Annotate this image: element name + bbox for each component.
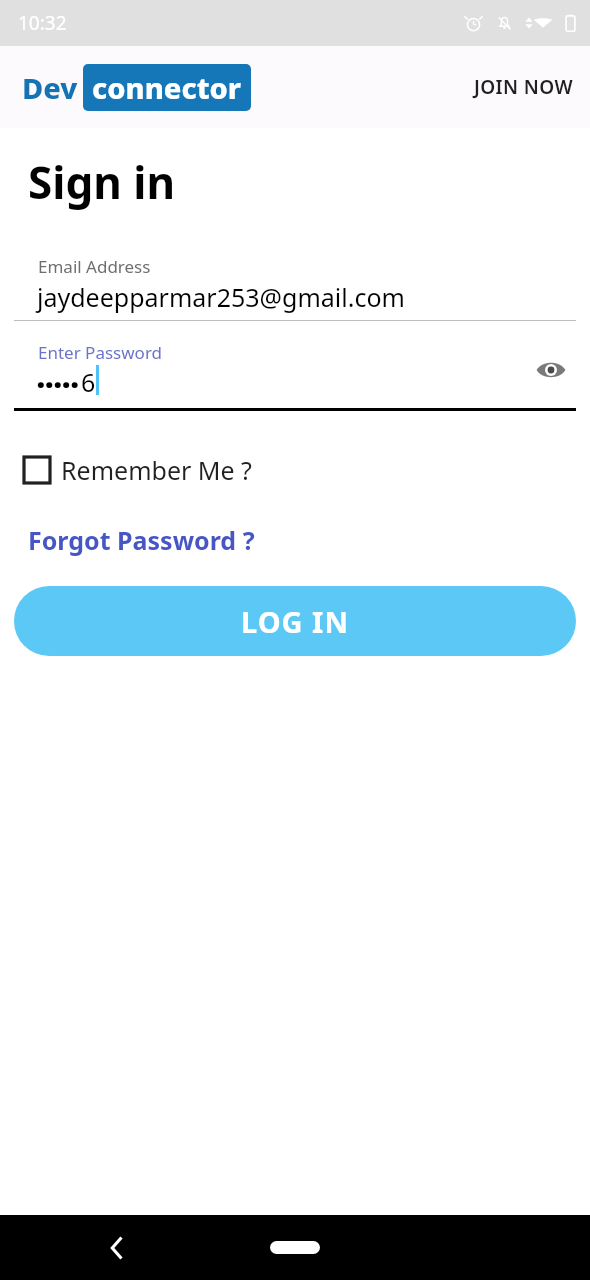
- staticText: Dev: [22, 68, 78, 107]
- staticText: JOIN NOW: [474, 74, 573, 100]
- button[interactable]: Email Address: [0, 255, 590, 321]
- staticText: Email Address: [38, 255, 151, 278]
- staticText: connector: [92, 68, 242, 107]
- button[interactable]: Dev: [22, 64, 251, 111]
- staticText: Enter Password: [38, 341, 163, 364]
- button[interactable]: Home: [262, 1233, 328, 1262]
- staticText: jaydeepparmar253@gmail.com: [37, 280, 405, 314]
- staticText: 6: [81, 365, 96, 399]
- staticText: Forgot Password ?: [28, 523, 255, 557]
- staticText: Sign in: [28, 152, 176, 212]
- button[interactable]: JOIN NOW: [457, 62, 590, 112]
- button[interactable]: Show password: [526, 350, 576, 390]
- button[interactable]: LOG IN: [14, 586, 576, 656]
- staticText: 10:32: [18, 10, 67, 36]
- button[interactable]: Remember Me ?: [0, 449, 268, 491]
- staticText: LOG IN: [241, 602, 349, 641]
- staticText: Remember Me ?: [61, 453, 252, 487]
- button[interactable]: Enter Password: [0, 341, 590, 411]
- button[interactable]: Back: [98, 1224, 136, 1272]
- button[interactable]: Forgot Password ?: [0, 521, 271, 559]
